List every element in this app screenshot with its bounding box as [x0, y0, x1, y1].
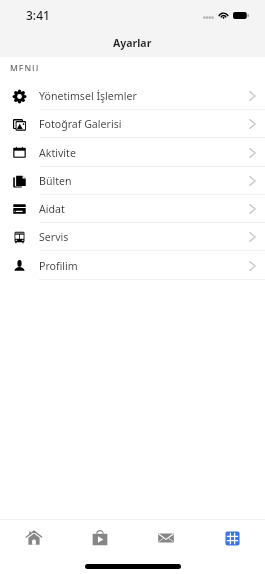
button[interactable]: Store [67, 520, 133, 556]
button[interactable]: Aktivite [0, 138, 265, 167]
button[interactable]: Bülten [0, 167, 265, 195]
button[interactable]: Profilim [0, 251, 265, 280]
staticText: Bülten [39, 174, 72, 188]
staticText: Ayarlar [113, 36, 152, 50]
staticText: Aidat [39, 202, 65, 216]
button[interactable]: Aidat [0, 195, 265, 223]
staticText: Servis [39, 230, 69, 244]
button[interactable]: Yönetimsel İşlemler [0, 82, 265, 110]
staticText: 3:41 [26, 7, 50, 23]
button[interactable]: Apps [199, 520, 265, 556]
button[interactable]: Mail [133, 520, 199, 556]
staticText: Yönetimsel İşlemler [39, 89, 137, 103]
staticText: MENU [10, 63, 40, 71]
button[interactable]: Fotoğraf Galerisi [0, 110, 265, 138]
button[interactable]: Servis [0, 223, 265, 251]
staticText: Fotoğraf Galerisi [39, 117, 122, 131]
button[interactable]: Home [0, 520, 67, 556]
staticText: Profilim [39, 259, 78, 273]
staticText: Aktivite [39, 146, 76, 160]
